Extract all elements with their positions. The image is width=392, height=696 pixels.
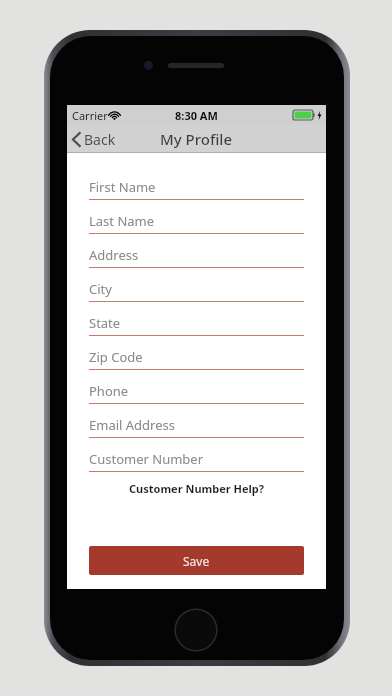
staticText: Back (84, 130, 116, 149)
staticText: Carrier (72, 108, 108, 123)
staticText: Zip Code (89, 348, 143, 366)
button[interactable]: City (89, 276, 304, 302)
staticText: First Name (89, 178, 156, 196)
staticText: Customer Number (89, 450, 204, 468)
button[interactable]: First Name (89, 174, 304, 200)
staticText: City (89, 280, 112, 298)
staticText: Address (89, 246, 139, 264)
staticText: Last Name (89, 212, 155, 230)
staticText: 8:30 AM (175, 108, 218, 123)
staticText: Email Address (89, 416, 175, 434)
other: Home (174, 608, 218, 652)
button[interactable]: Customer Number Help? (89, 481, 304, 496)
staticText: Save (183, 553, 210, 569)
staticText: My Profile (160, 129, 233, 149)
button[interactable]: Back (67, 125, 124, 153)
button[interactable]: Save (89, 546, 304, 575)
staticText: Customer Number Help? (129, 481, 265, 496)
button[interactable]: Address (89, 242, 304, 268)
button[interactable]: Last Name (89, 208, 304, 234)
button[interactable]: Phone (89, 378, 304, 404)
button[interactable]: Customer Number (89, 446, 304, 472)
staticText: State (89, 314, 121, 332)
staticText: Phone (89, 382, 129, 400)
button[interactable]: Email Address (89, 412, 304, 438)
button[interactable]: Zip Code (89, 344, 304, 370)
button[interactable]: State (89, 310, 304, 336)
